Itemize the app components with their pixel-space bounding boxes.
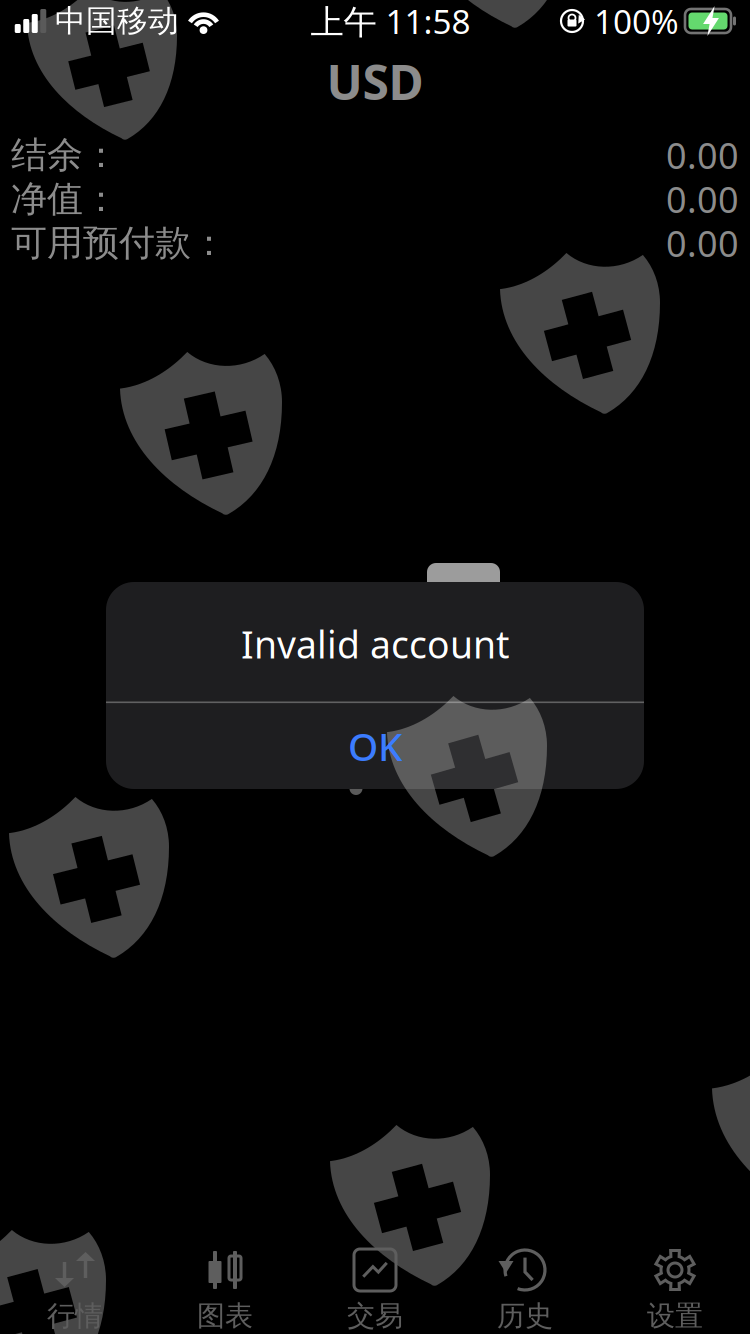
staticText: 设置	[647, 1299, 703, 1333]
button[interactable]: 交易	[300, 1242, 450, 1334]
staticText: 0.00	[666, 219, 739, 267]
staticText: 净值：	[11, 177, 119, 221]
staticText: 行情	[47, 1299, 103, 1333]
staticText: USD	[326, 50, 423, 113]
button[interactable]: 历史	[450, 1242, 600, 1334]
staticText: 历史	[497, 1299, 553, 1333]
button[interactable]: 图表	[150, 1242, 300, 1334]
staticText: Invalid account	[241, 619, 509, 669]
staticText: 100%	[594, 0, 679, 43]
staticText: 0.00	[666, 131, 739, 179]
staticText: 结余：	[11, 133, 119, 177]
staticText: 中国移动	[55, 2, 179, 40]
staticText: 上午 11:58	[310, 0, 470, 43]
staticText: 图表	[197, 1299, 253, 1333]
button[interactable]: 行情	[0, 1242, 150, 1334]
staticText: OK	[348, 720, 402, 772]
staticText: 0.00	[666, 175, 739, 223]
button[interactable]: OK	[106, 703, 644, 789]
staticText: 可用预付款：	[11, 221, 227, 265]
button[interactable]: 设置	[600, 1242, 750, 1334]
staticText: 交易	[347, 1299, 403, 1333]
